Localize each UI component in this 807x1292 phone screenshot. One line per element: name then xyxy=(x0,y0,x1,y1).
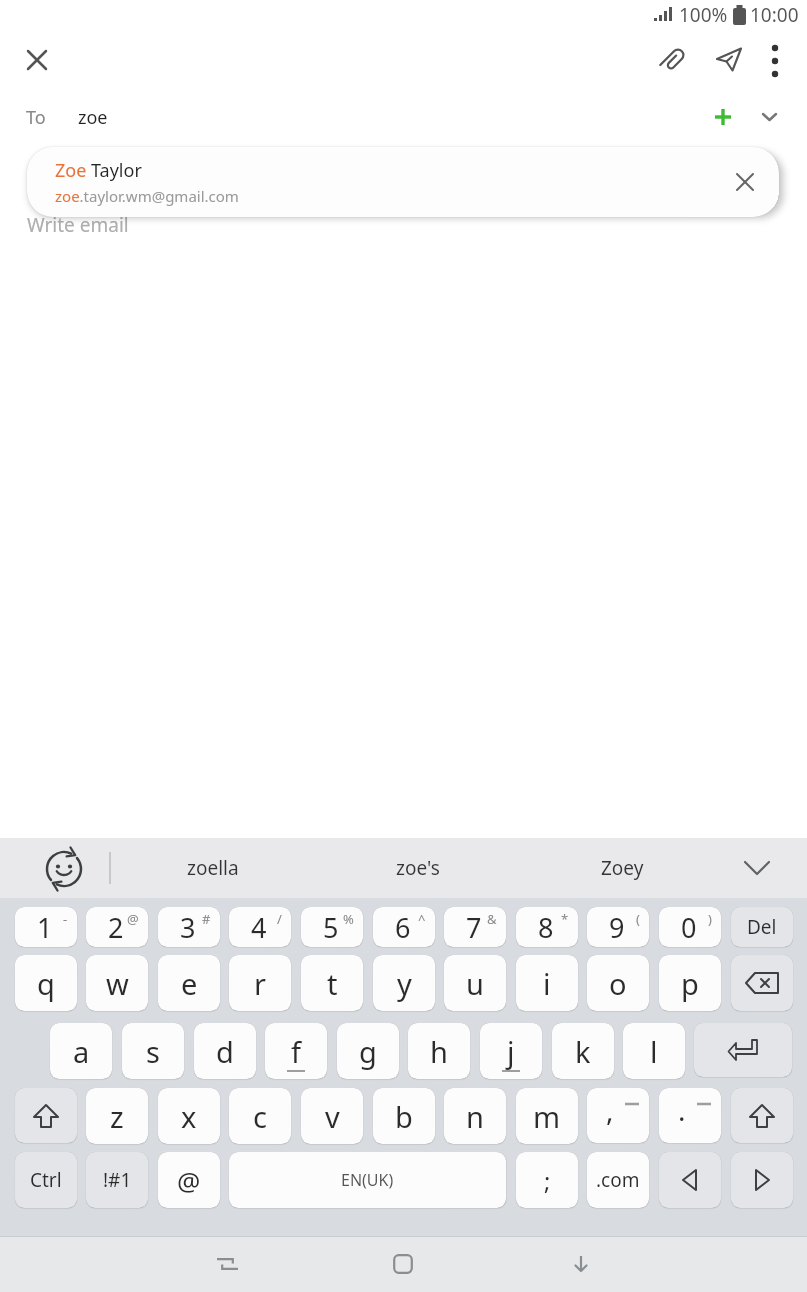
staticText: y xyxy=(397,964,412,1003)
button[interactable] xyxy=(731,1152,793,1208)
button[interactable]: u xyxy=(444,955,506,1011)
button[interactable]: c xyxy=(229,1088,291,1144)
button[interactable]: z xyxy=(86,1088,148,1144)
button[interactable] xyxy=(703,97,743,137)
button[interactable]: p xyxy=(659,955,721,1011)
button[interactable]: ; xyxy=(516,1152,578,1208)
button[interactable]: 8 xyxy=(516,907,578,947)
staticText: 4 xyxy=(251,909,267,946)
button[interactable]: i xyxy=(516,955,578,1011)
button[interactable]: 7 xyxy=(444,907,506,947)
staticText: s xyxy=(146,1032,160,1071)
button[interactable]: 5 xyxy=(301,907,363,947)
staticText: x xyxy=(181,1097,197,1136)
button[interactable]: 6 xyxy=(373,907,435,947)
button[interactable]: .com xyxy=(587,1152,649,1208)
button[interactable] xyxy=(731,1088,793,1143)
staticText: zoe xyxy=(78,105,108,130)
button[interactable]: m xyxy=(516,1088,578,1144)
button[interactable]: f xyxy=(265,1023,327,1079)
button[interactable]: @ xyxy=(158,1152,220,1208)
button[interactable] xyxy=(694,1023,792,1077)
staticText: q xyxy=(37,964,55,1003)
staticText: 1 xyxy=(37,909,53,946)
staticText: ( xyxy=(636,910,640,928)
button[interactable]: e xyxy=(158,955,220,1011)
button[interactable]: zoella xyxy=(110,838,315,898)
button[interactable]: zoe's xyxy=(315,838,520,898)
staticText: 8 xyxy=(538,909,554,946)
button[interactable]: 3 xyxy=(158,907,220,947)
button[interactable]: Ctrl xyxy=(15,1152,77,1208)
button[interactable]: h xyxy=(408,1023,470,1079)
button[interactable]: o xyxy=(587,955,649,1011)
button[interactable]: n xyxy=(444,1088,506,1144)
button[interactable]: d xyxy=(194,1023,256,1079)
button[interactable]: y xyxy=(373,955,435,1011)
staticText: Zoey xyxy=(601,855,644,881)
button[interactable]: a xyxy=(50,1023,112,1079)
staticText: ; xyxy=(544,1164,551,1197)
staticText: zoella xyxy=(187,855,239,881)
staticText: EN(UK) xyxy=(341,1169,394,1191)
button[interactable]: , xyxy=(587,1088,649,1143)
button[interactable]: w xyxy=(86,955,148,1011)
staticText: To xyxy=(26,105,46,130)
staticText: zoe.taylor.wm@gmail.com xyxy=(55,186,239,206)
button[interactable] xyxy=(651,38,695,82)
staticText: 2 xyxy=(108,909,124,946)
staticText: Write email xyxy=(27,212,129,238)
button[interactable] xyxy=(17,40,57,80)
staticText: z xyxy=(110,1097,124,1136)
button[interactable] xyxy=(751,99,787,135)
staticText: Zoe Taylor xyxy=(55,158,142,183)
button[interactable]: r xyxy=(229,955,291,1011)
button[interactable] xyxy=(34,846,94,890)
button[interactable]: s xyxy=(122,1023,184,1079)
button[interactable]: k xyxy=(552,1023,614,1079)
button[interactable] xyxy=(759,44,791,76)
staticText: g xyxy=(359,1032,377,1071)
button[interactable]: . xyxy=(659,1088,721,1143)
button[interactable]: j xyxy=(480,1023,542,1079)
button[interactable]: x xyxy=(158,1088,220,1144)
button[interactable] xyxy=(195,1236,259,1292)
button[interactable]: 4 xyxy=(229,907,291,947)
staticText: r xyxy=(254,964,266,1003)
button[interactable]: Del xyxy=(731,907,793,947)
staticText: 6 xyxy=(395,909,411,946)
button[interactable]: t xyxy=(301,955,363,1011)
staticText: # xyxy=(202,910,211,928)
button[interactable] xyxy=(707,38,751,82)
staticText: 9 xyxy=(609,909,625,946)
button[interactable]: 0 xyxy=(659,907,721,947)
button[interactable]: g xyxy=(337,1023,399,1079)
button[interactable] xyxy=(659,1152,721,1208)
button[interactable]: Zoey xyxy=(520,838,725,898)
button[interactable]: 9 xyxy=(587,907,649,947)
button[interactable] xyxy=(725,846,789,890)
button[interactable] xyxy=(15,1088,77,1143)
staticText: o xyxy=(609,964,627,1003)
button[interactable]: Zoe Taylor xyxy=(27,147,779,217)
button[interactable] xyxy=(731,955,793,1011)
button[interactable] xyxy=(727,164,763,200)
staticText: 5 xyxy=(323,909,339,946)
staticText: ) xyxy=(708,910,712,928)
staticText: @ xyxy=(127,910,139,928)
staticText: e xyxy=(181,964,198,1003)
staticText: w xyxy=(106,964,129,1003)
button[interactable] xyxy=(371,1236,435,1292)
button[interactable]: 1 xyxy=(15,907,77,947)
button[interactable]: 2 xyxy=(86,907,148,947)
button[interactable]: b xyxy=(373,1088,435,1144)
button[interactable]: v xyxy=(301,1088,363,1144)
staticText: , xyxy=(606,1091,614,1129)
button[interactable] xyxy=(549,1236,613,1292)
staticText: !#1 xyxy=(103,1167,132,1193)
staticText: % xyxy=(343,910,354,928)
button[interactable]: q xyxy=(15,955,77,1011)
button[interactable]: EN(UK) xyxy=(229,1152,506,1208)
button[interactable]: !#1 xyxy=(86,1152,148,1208)
button[interactable]: l xyxy=(623,1023,685,1079)
